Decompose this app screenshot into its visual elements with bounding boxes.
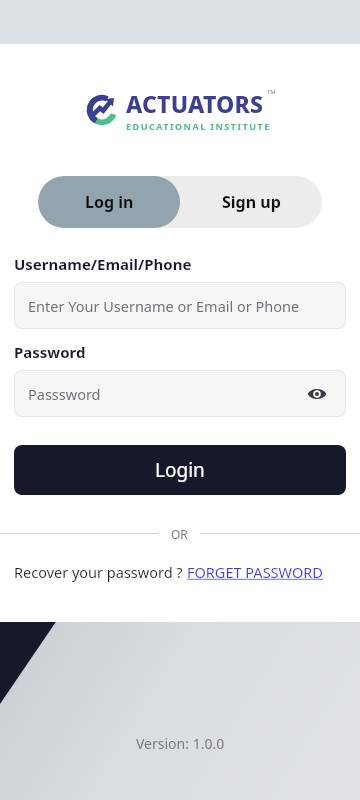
staticText: Passsword: [28, 384, 101, 404]
staticText: Login: [155, 457, 205, 483]
button[interactable]: Sign up: [180, 176, 322, 228]
staticText: EDUCATIONAL INSTITUTE: [126, 120, 271, 132]
staticText: Password: [14, 342, 86, 362]
staticText: ACTUATORS: [126, 88, 264, 119]
staticText: Enter Your Username or Email or Phone: [28, 296, 300, 316]
staticText: Recover your password ?: [14, 562, 187, 582]
button[interactable]: Log in: [38, 176, 180, 228]
staticText: FORGET PASSWORD: [187, 562, 323, 582]
staticText: Sign up: [222, 191, 281, 213]
button[interactable]: Show password: [302, 379, 332, 409]
button[interactable]: Enter Your Username or Email or Phone: [14, 282, 346, 329]
staticText: Version: 1.0.0: [136, 734, 225, 753]
button[interactable]: Login: [14, 445, 346, 495]
staticText: Log in: [85, 191, 134, 213]
button[interactable]: Passsword: [14, 370, 346, 417]
staticText: Username/Email/Phone: [14, 254, 192, 274]
staticText: TM: [267, 88, 276, 96]
staticText: OR: [171, 526, 188, 540]
button[interactable]: FORGET PASSWORD: [187, 562, 323, 582]
